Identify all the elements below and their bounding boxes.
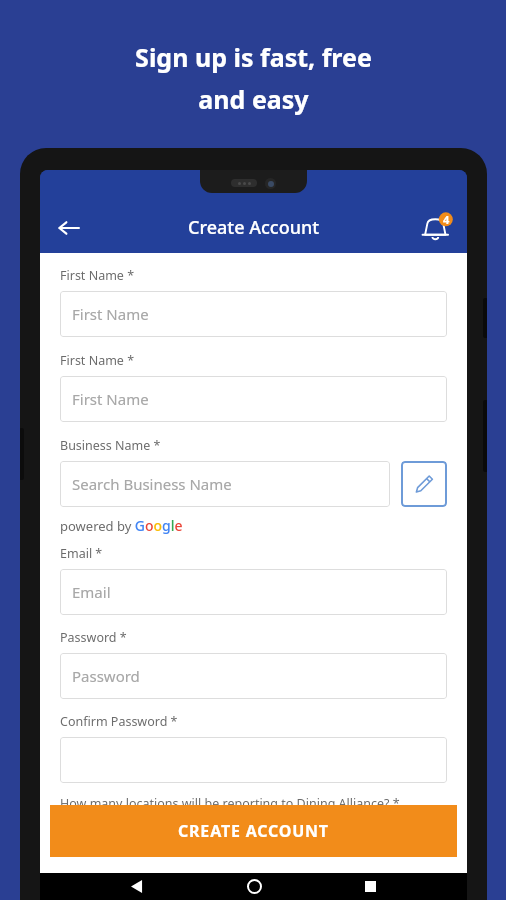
button[interactable]: First Name: [60, 376, 447, 422]
button[interactable]: Search Business Name: [60, 461, 390, 507]
staticText: First Name *: [60, 267, 135, 284]
staticText: Password *: [60, 629, 127, 646]
staticText: Sign up is fast, free: [135, 40, 372, 74]
staticText: Password: [72, 666, 140, 686]
staticText: Business Name *: [60, 437, 161, 454]
button[interactable]: Email: [60, 569, 447, 615]
staticText: Search Business Name: [72, 474, 232, 494]
staticText: Email: [72, 582, 111, 602]
button[interactable]: Back: [46, 205, 92, 251]
button[interactable]: Home: [234, 873, 274, 900]
staticText: powered by Google: [60, 516, 183, 535]
staticText: First Name: [72, 304, 149, 324]
staticText: Confirm Password *: [60, 713, 178, 730]
button[interactable]: Recent apps: [350, 873, 390, 900]
button[interactable]: [60, 737, 447, 783]
staticText: How many locations will be reporting to …: [60, 795, 400, 812]
button[interactable]: Password: [60, 653, 447, 699]
staticText: First Name: [72, 389, 149, 409]
staticText: Email *: [60, 545, 103, 562]
button[interactable]: Notifications: [415, 206, 459, 250]
staticText: Create Account: [188, 215, 320, 240]
button[interactable]: CREATE ACCOUNT: [50, 805, 457, 857]
button[interactable]: Back: [117, 873, 157, 900]
staticText: and easy: [198, 82, 309, 116]
button[interactable]: First Name: [60, 291, 447, 337]
staticText: 4: [443, 212, 450, 227]
button[interactable]: Edit business name: [401, 461, 447, 507]
staticText: First Name *: [60, 352, 135, 369]
staticText: CREATE ACCOUNT: [178, 820, 329, 842]
